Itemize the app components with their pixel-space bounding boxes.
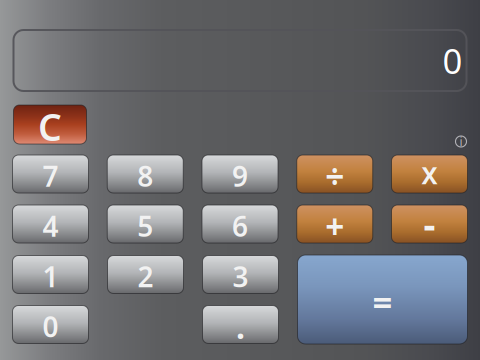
- staticText: =: [372, 278, 392, 324]
- button[interactable]: 3: [202, 255, 278, 293]
- button[interactable]: .: [202, 305, 278, 343]
- staticText: .: [236, 305, 245, 348]
- button[interactable]: 0: [12, 305, 88, 343]
- button[interactable]: X: [391, 155, 467, 193]
- button[interactable]: 2: [107, 255, 183, 293]
- button[interactable]: 9: [202, 155, 278, 193]
- staticText: 6: [232, 207, 248, 245]
- staticText: 3: [232, 258, 248, 295]
- staticText: 2: [137, 258, 153, 295]
- button[interactable]: 8: [107, 155, 183, 193]
- staticText: 9: [232, 157, 248, 195]
- button[interactable]: 1: [12, 255, 88, 293]
- button[interactable]: =: [297, 255, 467, 344]
- button[interactable]: -: [391, 205, 467, 243]
- staticText: 7: [42, 157, 58, 195]
- staticText: 0: [442, 37, 462, 83]
- button[interactable]: +: [297, 205, 373, 243]
- button[interactable]: About: [455, 136, 466, 147]
- button[interactable]: C: [13, 105, 86, 144]
- staticText: C: [38, 102, 62, 151]
- staticText: 5: [137, 207, 153, 245]
- staticText: 1: [42, 258, 58, 295]
- button[interactable]: 7: [12, 155, 88, 193]
- staticText: 4: [42, 207, 58, 245]
- button[interactable]: 4: [12, 205, 88, 243]
- staticText: i: [459, 133, 462, 149]
- staticText: -: [423, 199, 435, 249]
- staticText: X: [421, 159, 437, 191]
- staticText: ÷: [325, 154, 344, 198]
- staticText: 0: [42, 308, 58, 345]
- staticText: 8: [137, 157, 153, 195]
- staticText: +: [325, 204, 344, 248]
- button[interactable]: 6: [202, 205, 278, 243]
- button[interactable]: ÷: [297, 155, 373, 193]
- button[interactable]: 5: [107, 205, 183, 243]
